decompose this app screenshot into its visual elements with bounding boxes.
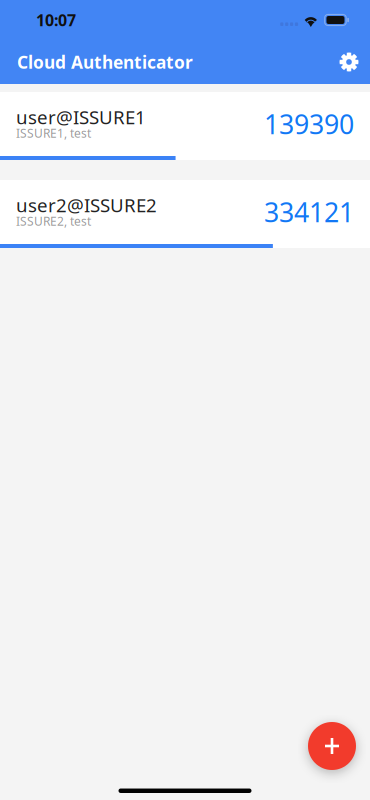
button[interactable]: user2@ISSURE2	[0, 180, 370, 248]
button[interactable]: user@ISSURE1	[0, 92, 370, 160]
staticText: Cloud Authenticator	[17, 50, 193, 73]
staticText: ISSURE1, test	[16, 125, 91, 141]
button[interactable]: Add account	[308, 722, 356, 770]
staticText: 334121	[264, 194, 354, 230]
staticText: ISSURE2, test	[16, 213, 91, 229]
staticText: 139390	[264, 106, 354, 142]
button[interactable]: Settings	[334, 47, 364, 77]
staticText: user2@ISSURE2	[16, 193, 157, 217]
staticText: user@ISSURE1	[16, 105, 146, 129]
staticText: 10:07	[36, 9, 76, 31]
